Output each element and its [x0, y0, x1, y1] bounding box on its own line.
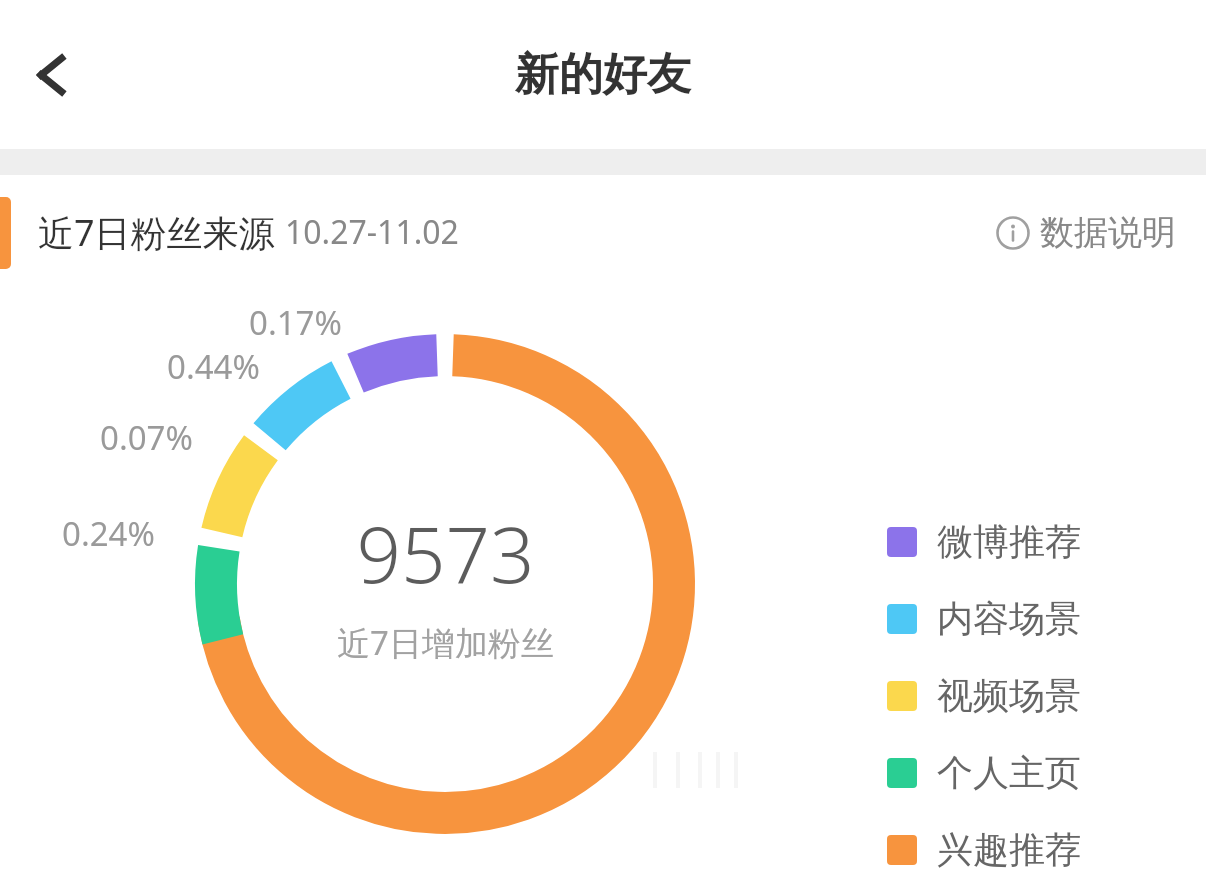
staticText: 10.27-11.02	[285, 210, 459, 254]
staticText: 近7日粉丝来源	[38, 208, 275, 257]
button[interactable]: 微博推荐	[887, 519, 1081, 564]
button[interactable]: 兴趣推荐	[887, 827, 1081, 872]
staticText: 个人主页	[937, 750, 1081, 795]
staticText: 0.07%	[100, 415, 193, 460]
staticText: 兴趣推荐	[937, 827, 1081, 872]
staticText: 内容场景	[937, 596, 1081, 641]
button[interactable]: 视频场景	[887, 673, 1081, 718]
staticText: 新的好友	[515, 47, 691, 102]
staticText: 微博推荐	[937, 519, 1081, 564]
button[interactable]: 个人主页	[887, 750, 1081, 795]
button[interactable]: Back	[10, 33, 94, 117]
staticText: 近7日增加粉丝	[337, 620, 554, 665]
button[interactable]: 数据说明	[996, 211, 1176, 254]
staticText: 0.17%	[249, 300, 342, 345]
staticText: 数据说明	[1040, 211, 1176, 254]
staticText: 视频场景	[937, 673, 1081, 718]
staticText: 9573	[356, 500, 535, 606]
staticText: 0.44%	[167, 344, 260, 389]
staticText: 0.24%	[62, 511, 155, 556]
button[interactable]: 内容场景	[887, 596, 1081, 641]
